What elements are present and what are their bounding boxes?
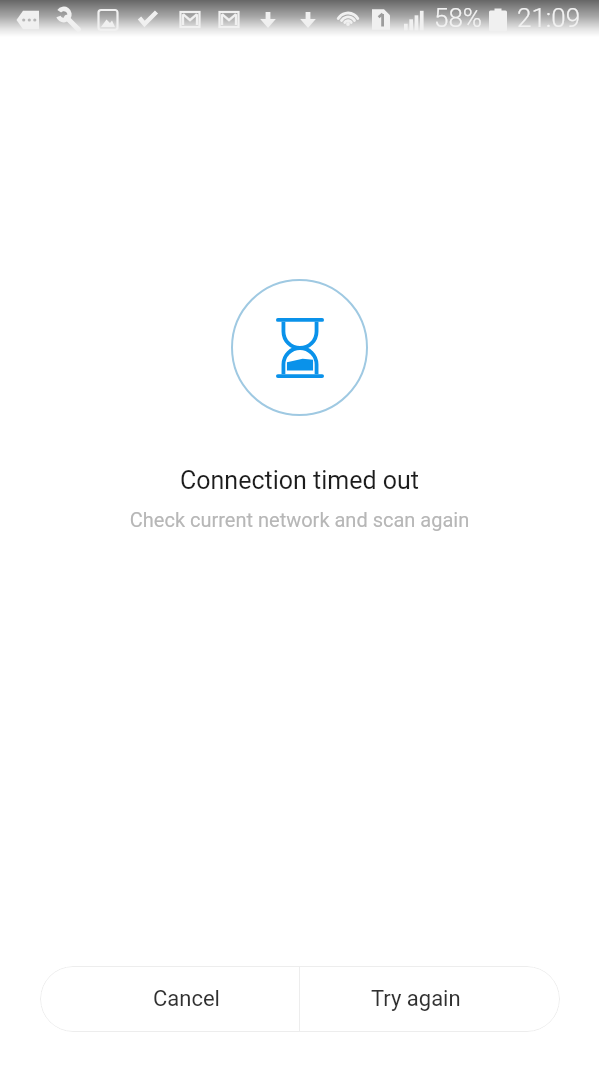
staticText: Try again	[371, 986, 461, 1012]
staticText: 58%	[434, 3, 483, 33]
staticText: 21:09	[517, 3, 581, 33]
staticText: Connection timed out	[0, 466, 599, 495]
button[interactable]: Cancel	[40, 966, 299, 1032]
staticText: Cancel	[153, 986, 220, 1012]
other: Timed out	[231, 279, 368, 416]
staticText: Check current network and scan again	[0, 508, 599, 531]
button[interactable]: Try again	[300, 966, 560, 1032]
